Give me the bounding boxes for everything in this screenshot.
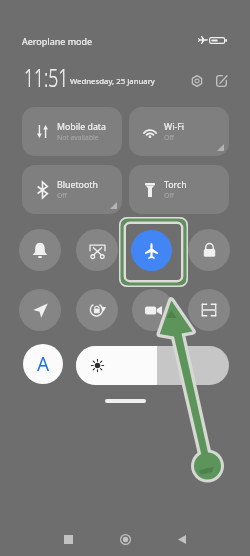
staticText: A <box>37 351 50 377</box>
staticText: Wi-Fi <box>164 121 185 133</box>
button[interactable]: Bluetooth <box>22 165 122 214</box>
button[interactable]: Silent mode <box>19 229 61 271</box>
button[interactable]: Auto-rotate <box>76 289 118 331</box>
button[interactable]: Aeroplane mode toggle <box>119 217 188 287</box>
button[interactable]: Torch <box>129 165 229 214</box>
button[interactable]: Brightness <box>76 346 229 385</box>
button[interactable]: Screenshot <box>76 229 118 271</box>
button[interactable]: Wi-Fi <box>129 107 229 156</box>
staticText: Not available <box>57 133 99 142</box>
staticText: Torch <box>164 179 187 191</box>
button[interactable]: Settings <box>185 69 209 93</box>
staticText: Mobile data <box>57 121 106 133</box>
staticText: Off <box>164 191 174 200</box>
button[interactable]: Screen record <box>132 289 174 331</box>
button[interactable]: Location <box>19 289 61 331</box>
staticText: 11:51 <box>24 60 69 94</box>
staticText: Aeroplane mode <box>22 35 93 47</box>
button[interactable]: Back <box>167 524 197 554</box>
staticText: Off <box>164 133 174 142</box>
button[interactable]: Home <box>110 524 140 554</box>
button[interactable]: Recent apps <box>53 524 83 554</box>
button[interactable]: Mobile data <box>22 107 122 156</box>
staticText: Wednesday, 25 January <box>70 76 155 87</box>
staticText: Off <box>57 191 67 200</box>
button[interactable]: Edit tiles <box>209 69 233 93</box>
staticText: Bluetooth <box>57 179 98 191</box>
button[interactable]: Device controls <box>188 229 230 271</box>
button[interactable]: Auto brightness <box>23 344 63 384</box>
button[interactable]: Scan QR code <box>188 289 230 331</box>
